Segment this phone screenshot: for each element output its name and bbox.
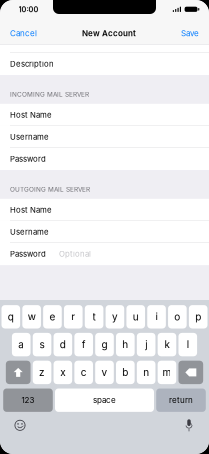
staticText: u — [133, 311, 139, 323]
staticText: INCOMING MAIL SERVER — [10, 90, 89, 98]
button[interactable]: Save — [175, 22, 209, 45]
button[interactable]: Password — [0, 148, 209, 170]
button[interactable]: Cancel — [0, 22, 43, 45]
staticText: h — [122, 339, 128, 351]
staticText: c — [81, 366, 87, 378]
button[interactable]: o — [168, 305, 187, 328]
button[interactable]: q — [1, 305, 20, 328]
button[interactable]: a — [12, 333, 30, 356]
button[interactable]: space — [55, 388, 154, 412]
button[interactable]: Shift — [6, 361, 30, 384]
staticText: p — [195, 311, 201, 323]
staticText: o — [174, 311, 180, 323]
staticText: g — [101, 339, 107, 351]
staticText: m — [162, 366, 171, 378]
staticText: i — [155, 311, 157, 323]
staticText: Host Name — [10, 110, 52, 120]
staticText: s — [39, 339, 44, 351]
staticText: y — [112, 311, 118, 323]
button[interactable]: z — [33, 361, 51, 384]
button[interactable]: d — [53, 333, 72, 356]
staticText: Host Name — [10, 205, 52, 215]
button[interactable]: Delete — [178, 361, 203, 384]
button[interactable]: y — [106, 305, 124, 328]
button[interactable]: s — [33, 333, 51, 356]
staticText: Save — [181, 28, 199, 38]
button[interactable]: v — [95, 361, 114, 384]
button[interactable]: Host Name — [0, 199, 209, 221]
staticText: t — [93, 311, 96, 323]
button[interactable]: p — [189, 305, 207, 328]
button[interactable]: f — [74, 333, 93, 356]
button[interactable]: i — [147, 305, 166, 328]
button[interactable]: Description — [0, 53, 209, 75]
staticText: 10:00 — [18, 5, 38, 14]
button[interactable]: r — [64, 305, 83, 328]
button[interactable]: c — [74, 361, 93, 384]
button[interactable]: h — [116, 333, 135, 356]
button[interactable]: e — [43, 305, 62, 328]
staticText: w — [28, 311, 36, 323]
button[interactable]: n — [137, 361, 155, 384]
staticText: v — [101, 366, 107, 378]
button[interactable]: j — [137, 333, 155, 356]
staticText: Username — [10, 132, 49, 142]
staticText: b — [122, 366, 128, 378]
button[interactable]: u — [126, 305, 145, 328]
staticText: j — [145, 339, 147, 351]
button[interactable]: return — [156, 388, 206, 412]
staticText: z — [39, 366, 45, 378]
staticText: r — [71, 311, 75, 323]
button[interactable]: Password — [0, 243, 209, 265]
button[interactable]: m — [158, 361, 176, 384]
staticText: l — [187, 339, 189, 351]
button[interactable]: Dictation — [177, 416, 201, 434]
staticText: Description — [10, 59, 54, 69]
staticText: n — [143, 366, 149, 378]
button[interactable]: Emoji — [8, 416, 32, 434]
staticText: Cancel — [10, 28, 37, 38]
button[interactable]: b — [116, 361, 135, 384]
button[interactable]: Username — [0, 221, 209, 243]
button[interactable]: k — [158, 333, 176, 356]
staticText: Password — [10, 249, 46, 259]
staticText: d — [60, 339, 66, 351]
button[interactable]: w — [22, 305, 41, 328]
button[interactable]: 123 — [3, 388, 53, 412]
button[interactable]: Host Name — [0, 104, 209, 126]
staticText: a — [18, 339, 24, 351]
staticText: k — [164, 339, 169, 351]
staticText: OUTGOING MAIL SERVER — [10, 185, 90, 193]
staticText: space — [93, 395, 116, 405]
button[interactable]: g — [95, 333, 114, 356]
staticText: x — [60, 366, 65, 378]
staticText: New Account — [82, 28, 136, 38]
button[interactable]: Username — [0, 126, 209, 148]
staticText: e — [49, 311, 55, 323]
button[interactable]: l — [178, 333, 197, 356]
button[interactable]: t — [85, 305, 103, 328]
button[interactable]: x — [53, 361, 72, 384]
staticText: Username — [10, 227, 49, 237]
staticText: 123 — [21, 395, 34, 405]
staticText: q — [8, 311, 14, 323]
staticText: return — [169, 395, 193, 405]
staticText: f — [82, 339, 86, 351]
staticText: Password — [10, 154, 46, 164]
staticText: Optional — [59, 249, 91, 259]
